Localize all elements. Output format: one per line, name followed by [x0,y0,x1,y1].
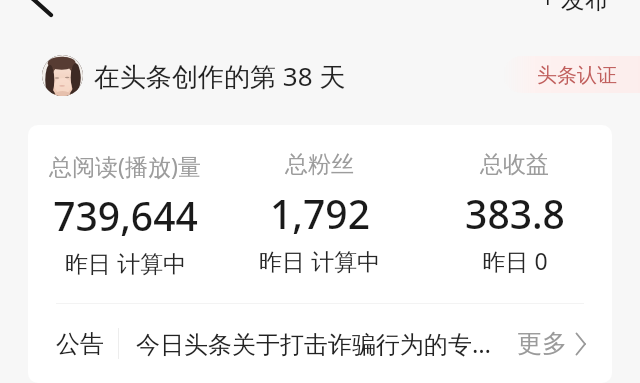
staticText: 昨日 计算中 [259,245,380,276]
staticText: 在头条创作的第 38 天 [94,58,346,94]
button[interactable]: + 发布 [537,0,613,19]
staticText: 头条认证 [537,63,617,88]
staticText: 739,644 [53,189,198,242]
button[interactable]: 总粉丝 [222,150,417,276]
button[interactable]: 公告 [28,304,612,383]
staticText: 383.8 [465,187,565,240]
button[interactable]: Back [15,0,59,14]
button[interactable]: 总收益 [417,150,612,276]
staticText: 公告 [56,329,104,359]
staticText: 总收益 [480,150,549,179]
staticText: 今日头条关于打击诈骗行为的专… [136,327,491,360]
staticText: 昨日 计算中 [65,247,186,278]
staticText: 1,792 [270,187,370,240]
staticText: 更多 [517,328,567,359]
staticText: 昨日 0 [482,245,548,276]
button[interactable]: Profile avatar [42,55,83,96]
button[interactable]: 头条认证 [503,56,640,93]
staticText: 总粉丝 [285,150,354,179]
staticText: 总阅读(播放)量 [49,150,201,181]
button[interactable]: 总阅读(播放)量 [28,150,222,278]
staticText: + 发布 [541,0,609,15]
